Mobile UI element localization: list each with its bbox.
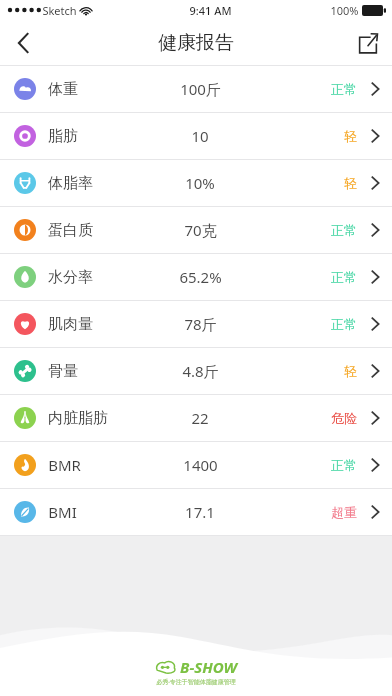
staticText: 78斤 xyxy=(184,314,217,334)
staticText: 100% xyxy=(330,3,359,18)
staticText: 9:41 AM xyxy=(189,3,232,18)
staticText: 70克 xyxy=(184,220,217,240)
staticText: 超重 xyxy=(331,504,357,520)
button[interactable]: 体脂率 xyxy=(0,160,392,206)
staticText: 轻 xyxy=(344,363,357,379)
staticText: 正常 xyxy=(331,457,357,473)
staticText: 正常 xyxy=(331,316,357,332)
button[interactable]: Back xyxy=(0,20,48,65)
staticText: 必秀·专注于智能体脂健康管理 xyxy=(156,678,236,686)
staticText: 体重 xyxy=(48,80,78,99)
staticText: 内脏脂肪 xyxy=(48,409,108,428)
button[interactable]: 骨量 xyxy=(0,348,392,394)
staticText: 100斤 xyxy=(180,79,221,99)
staticText: 水分率 xyxy=(48,268,93,287)
staticText: 10 xyxy=(191,126,209,146)
button[interactable]: 蛋白质 xyxy=(0,207,392,253)
staticText: Sketch xyxy=(42,3,77,18)
staticText: 1400 xyxy=(183,455,218,475)
button[interactable]: Share xyxy=(344,20,392,65)
staticText: B-SHOW xyxy=(180,657,237,677)
staticText: 17.1 xyxy=(185,502,215,522)
button[interactable]: 脂肪 xyxy=(0,113,392,159)
staticText: 22 xyxy=(191,408,209,428)
staticText: 蛋白质 xyxy=(48,221,93,240)
button[interactable]: 内脏脂肪 xyxy=(0,395,392,441)
staticText: 65.2% xyxy=(179,267,222,287)
staticText: 4.8斤 xyxy=(182,361,219,381)
staticText: 健康报告 xyxy=(158,31,234,55)
staticText: 脂肪 xyxy=(48,127,78,146)
button[interactable]: BMI xyxy=(0,489,392,535)
staticText: 体脂率 xyxy=(48,174,93,193)
staticText: 正常 xyxy=(331,269,357,285)
staticText: BMR xyxy=(48,455,81,475)
button[interactable]: 水分率 xyxy=(0,254,392,300)
staticText: BMI xyxy=(48,502,77,522)
staticText: 10% xyxy=(185,173,215,193)
staticText: 骨量 xyxy=(48,362,78,381)
button[interactable]: 体重 xyxy=(0,66,392,112)
staticText: 轻 xyxy=(344,175,357,191)
staticText: 正常 xyxy=(331,222,357,238)
staticText: 危险 xyxy=(331,410,357,426)
button[interactable]: 肌肉量 xyxy=(0,301,392,347)
button[interactable]: BMR xyxy=(0,442,392,488)
staticText: 正常 xyxy=(331,81,357,97)
staticText: 轻 xyxy=(344,128,357,144)
staticText: 肌肉量 xyxy=(48,315,93,334)
